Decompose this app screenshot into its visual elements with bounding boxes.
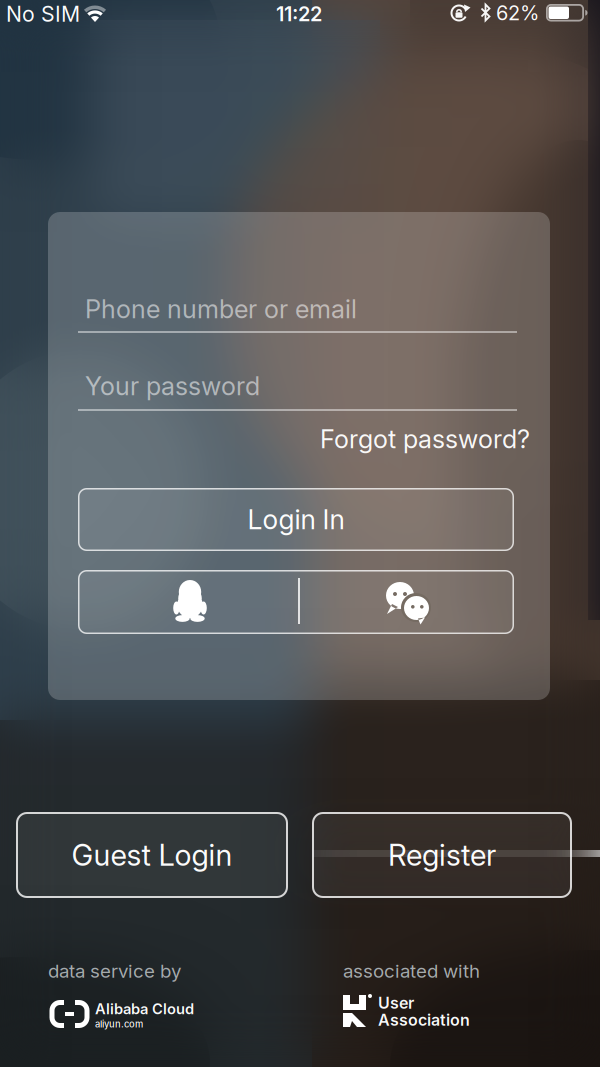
button[interactable]: Register: [312, 812, 572, 898]
staticText: User: [378, 994, 414, 1012]
staticText: Register: [388, 838, 496, 872]
button[interactable]: Log in with WeChat: [299, 571, 515, 633]
staticText: Forgot password?: [320, 424, 530, 454]
staticText: 11:22: [276, 2, 322, 26]
staticText: associated with: [343, 960, 480, 982]
staticText: Association: [378, 1011, 470, 1029]
staticText: Phone number or email: [85, 294, 357, 324]
staticText: Guest Login: [71, 838, 232, 872]
button[interactable]: Login In: [78, 488, 514, 551]
staticText: Your password: [85, 371, 260, 401]
staticText: Alibaba Cloud: [95, 1000, 194, 1018]
button[interactable]: Forgot password?: [320, 424, 530, 454]
staticText: aliyun.com: [95, 1018, 143, 1029]
button[interactable]: Guest Login: [16, 812, 288, 898]
staticText: No SIM: [6, 1, 80, 27]
button[interactable]: Log in with QQ: [82, 571, 298, 633]
staticText: 62%: [496, 1, 539, 25]
staticText: Login In: [247, 504, 344, 535]
staticText: data service by: [48, 960, 181, 982]
